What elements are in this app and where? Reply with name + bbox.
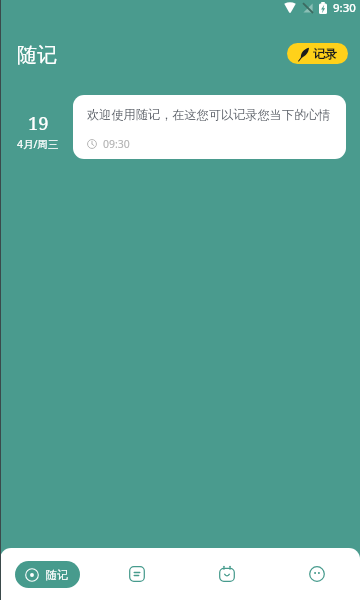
button[interactable]: 欢迎使用随记，在这您可以记录您当下的心情 xyxy=(73,95,346,159)
staticText: 记录 xyxy=(313,46,337,61)
button[interactable]: Profile xyxy=(296,554,338,594)
staticText: 随记 xyxy=(46,568,68,582)
button[interactable]: Calendar xyxy=(206,554,248,594)
staticText: 09:30 xyxy=(103,137,130,151)
button[interactable]: Notes list xyxy=(116,554,158,594)
staticText: 随记 xyxy=(17,43,57,65)
staticText: 9:30 xyxy=(333,0,356,15)
button[interactable]: 随记 xyxy=(15,561,80,588)
button[interactable]: 记录 xyxy=(287,43,348,64)
staticText: 4月/周三 xyxy=(17,137,59,151)
staticText: 19 xyxy=(28,110,49,135)
staticText: 欢迎使用随记，在这您可以记录您当下的心情 xyxy=(87,107,331,122)
